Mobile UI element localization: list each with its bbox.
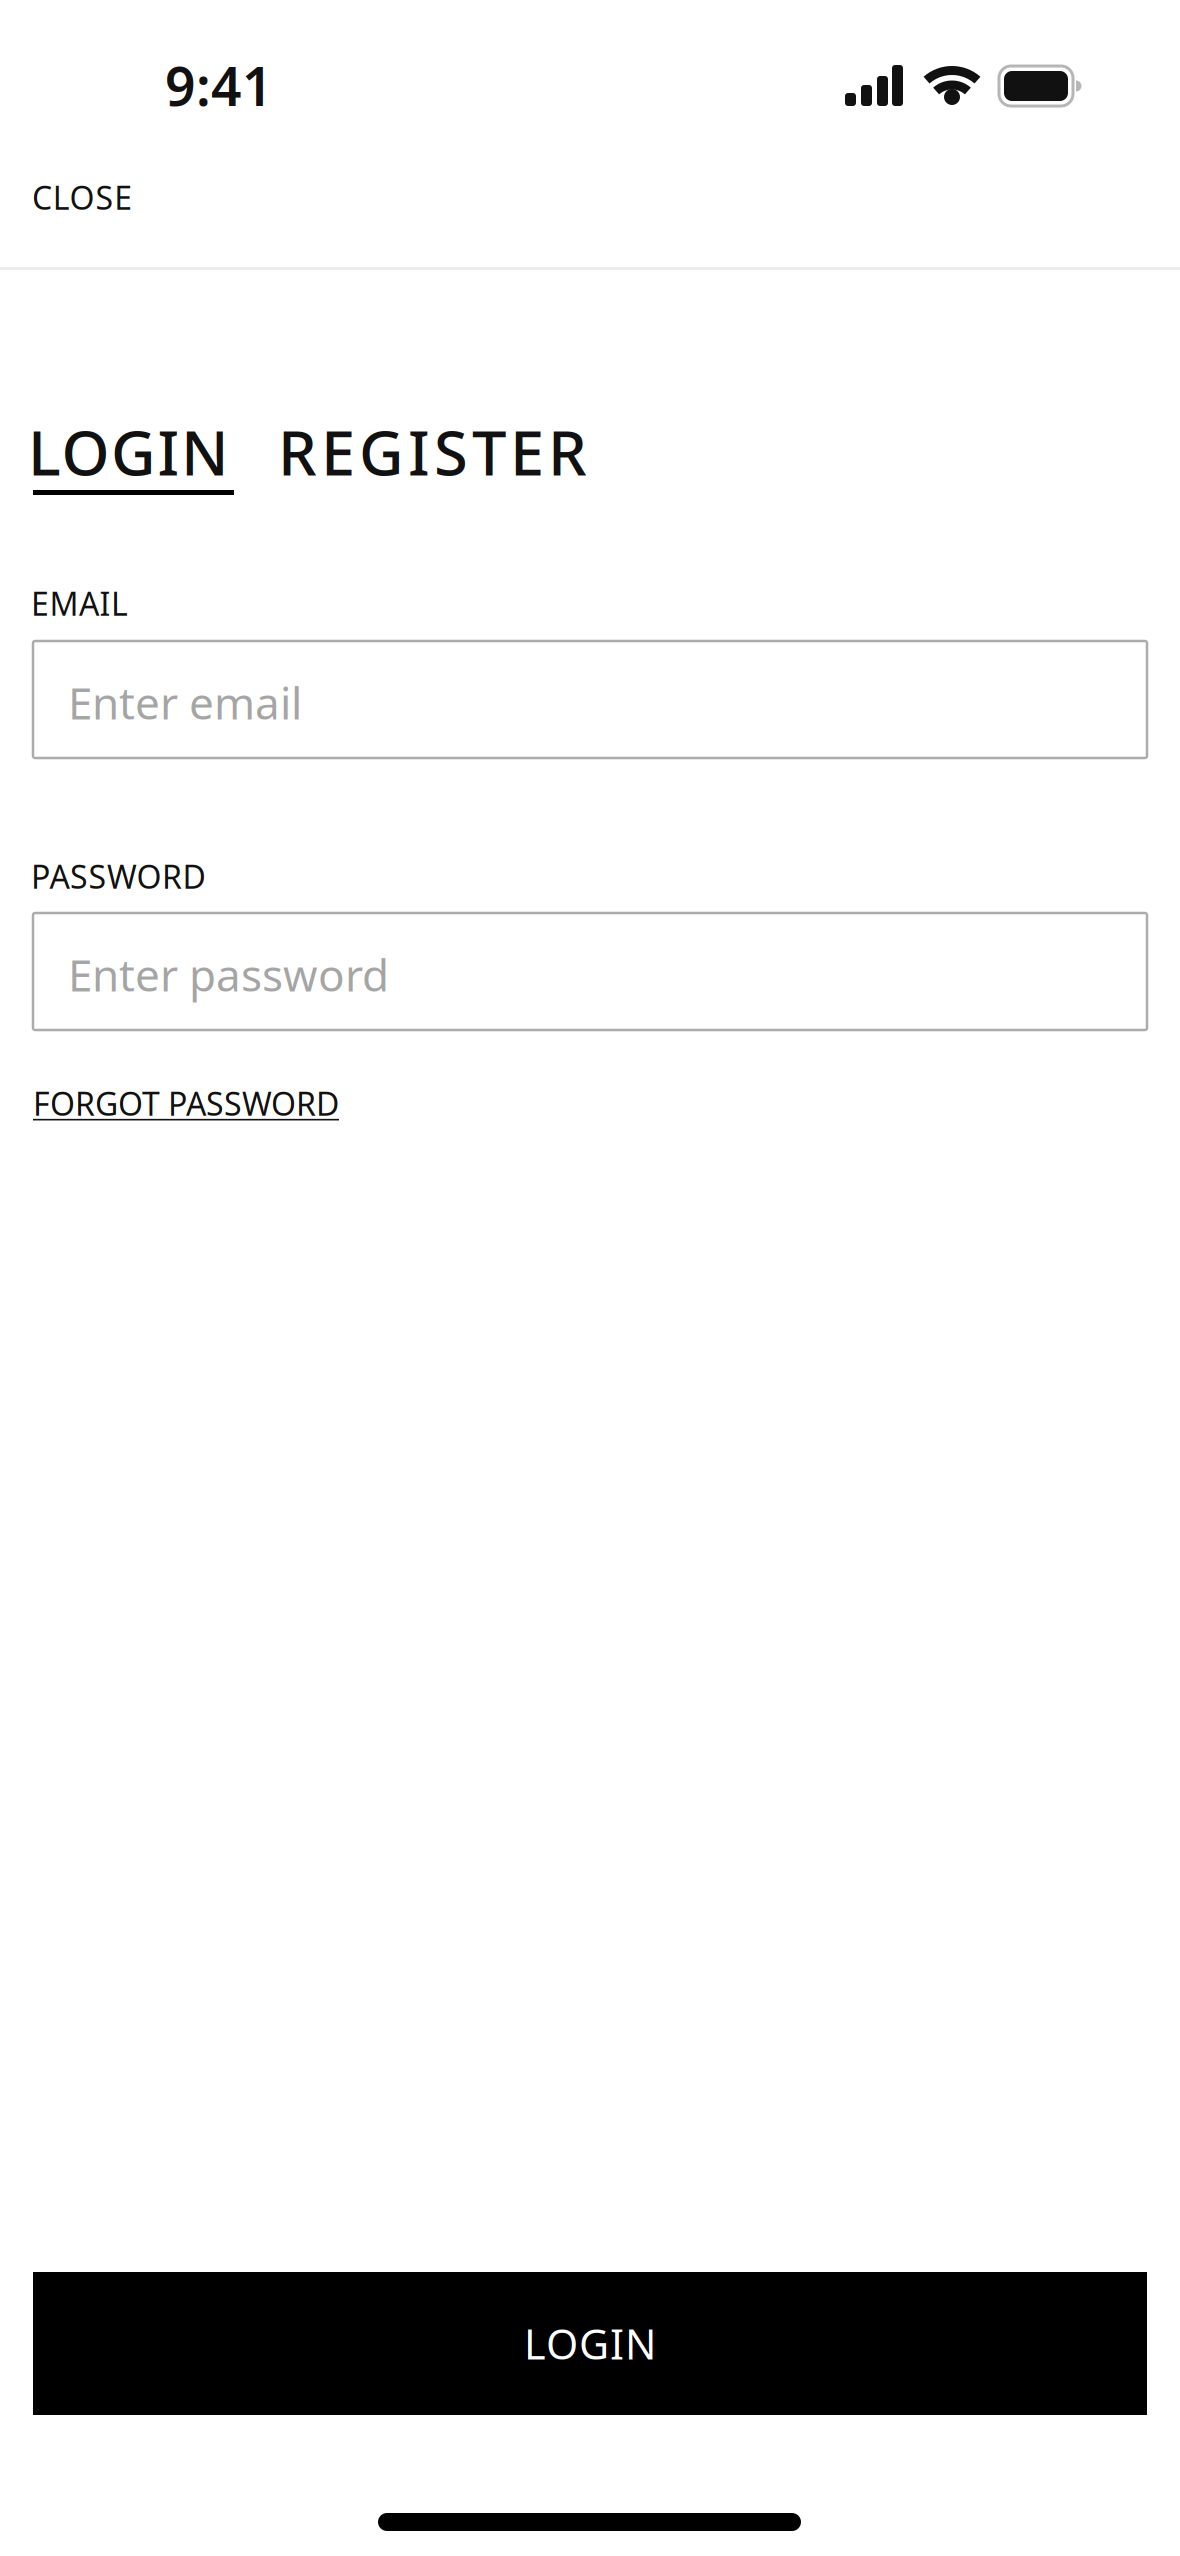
staticText: LOGIN	[28, 411, 229, 492]
button[interactable]: LOGIN	[28, 411, 229, 492]
staticText: PASSWORD	[31, 855, 205, 897]
button[interactable]: CLOSE	[32, 176, 132, 218]
staticText: LOGIN	[524, 2316, 656, 2371]
staticText: CLOSE	[32, 176, 132, 218]
staticText: 9:41	[165, 50, 273, 121]
staticText: Enter email	[68, 673, 302, 732]
staticText: Enter password	[68, 945, 389, 1004]
button[interactable]: LOGIN	[33, 2272, 1147, 2415]
button[interactable]: REGISTER	[278, 411, 587, 492]
staticText: FORGOT PASSWORD	[33, 1082, 339, 1124]
staticText: EMAIL	[31, 582, 128, 624]
staticText: REGISTER	[278, 411, 587, 492]
button[interactable]: FORGOT PASSWORD	[33, 1082, 339, 1124]
